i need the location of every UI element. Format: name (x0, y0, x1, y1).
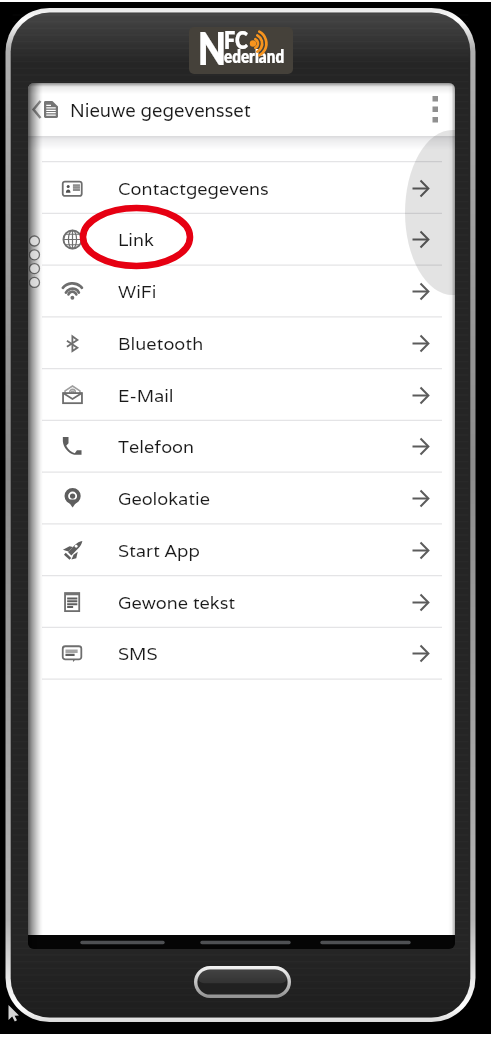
staticText: Nieuwe gegevensset (70, 98, 251, 122)
staticText: Contactgegevens (118, 177, 269, 200)
staticText: Start App (118, 539, 200, 562)
button[interactable]: Back (28, 83, 44, 136)
staticText: FC (224, 27, 249, 54)
staticText: Bluetooth (118, 332, 204, 355)
button[interactable]: Gewone tekst (28, 576, 455, 628)
button[interactable]: Link (28, 213, 455, 265)
staticText: N (198, 27, 226, 68)
staticText: SMS (118, 642, 158, 665)
staticText: E-Mail (118, 384, 174, 407)
button[interactable]: Bluetooth (28, 317, 455, 369)
staticText: Geolokatie (118, 487, 210, 510)
staticText: ederland (224, 44, 285, 67)
button[interactable]: WiFi (28, 265, 455, 317)
staticText: Gewone tekst (118, 591, 236, 614)
button[interactable]: Telefoon (28, 420, 455, 472)
staticText: WiFi (118, 280, 157, 303)
button[interactable]: Contactgegevens (28, 162, 455, 214)
button[interactable]: Start App (28, 524, 455, 576)
staticText: Link (118, 228, 154, 251)
button[interactable]: SMS (28, 627, 455, 679)
button[interactable]: Geolokatie (28, 472, 455, 524)
button[interactable]: E-Mail (28, 369, 455, 421)
staticText: Telefoon (118, 435, 194, 458)
button[interactable]: More options (415, 83, 455, 136)
